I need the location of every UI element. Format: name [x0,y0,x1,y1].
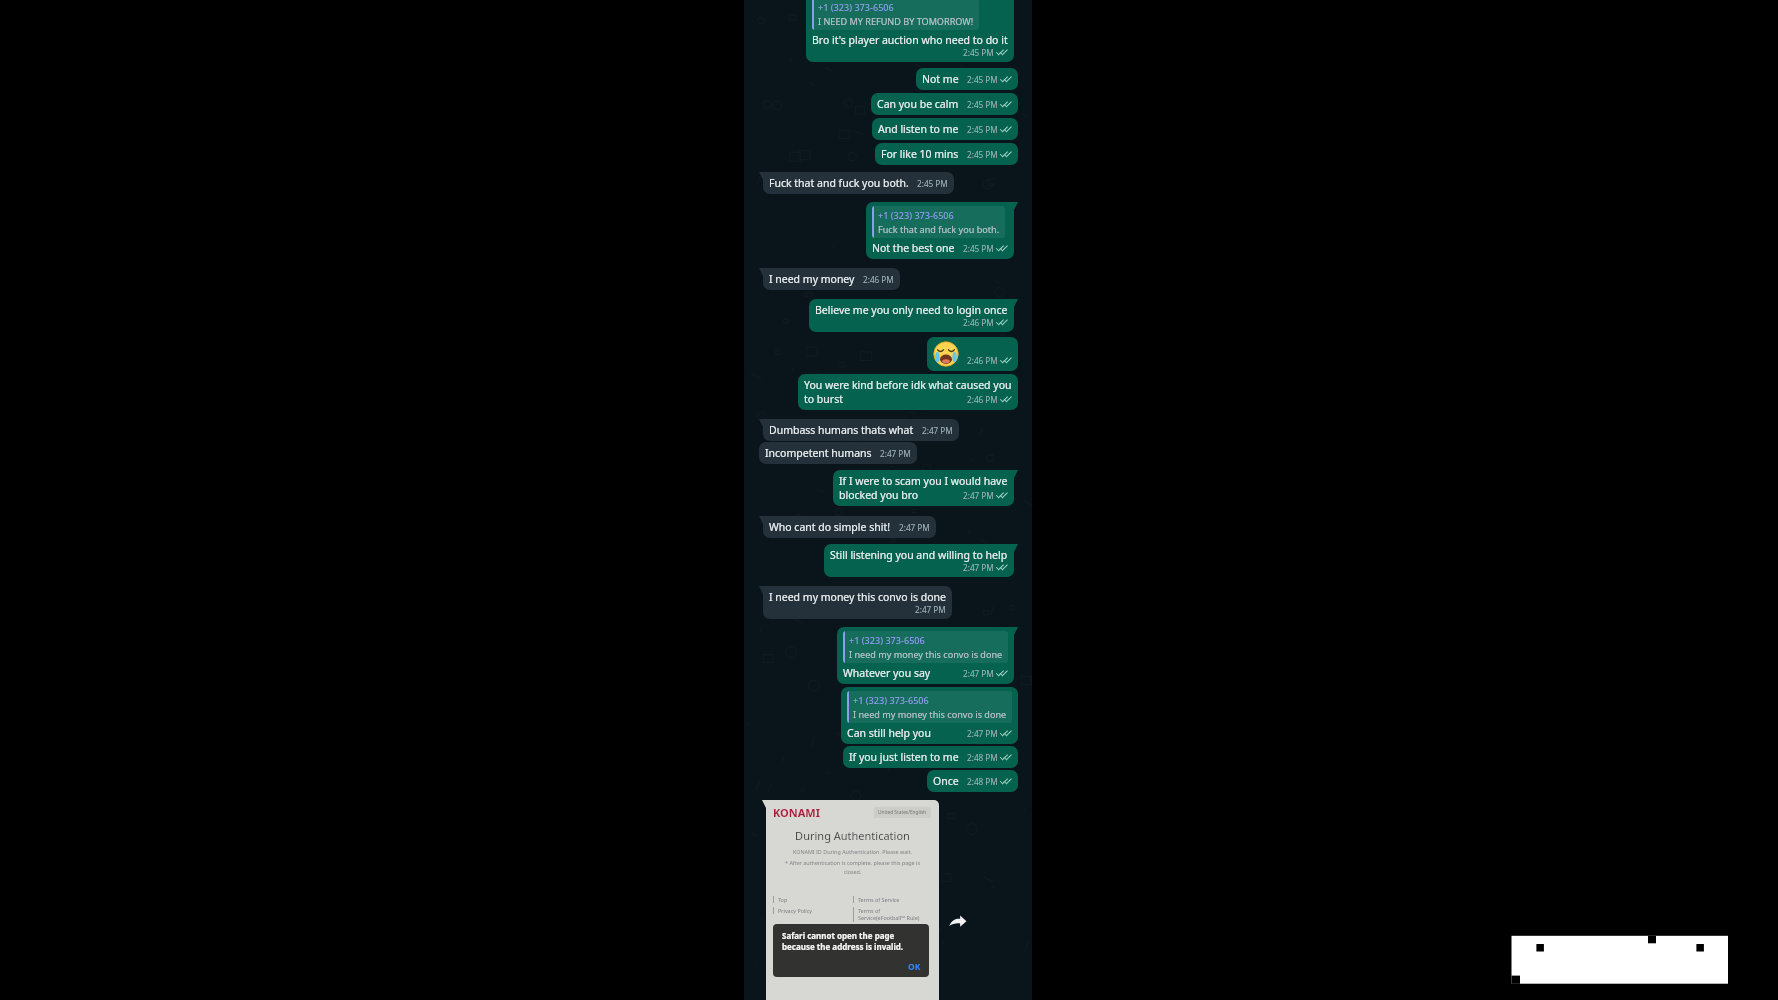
staticText: 2:47 PM [880,448,911,459]
staticText: And listen to me [878,122,959,136]
staticText: 2:48 PM [967,752,998,763]
button[interactable]: Not me [916,68,1018,90]
staticText: I need my money this convo is done [853,708,1007,720]
staticText: I need my money this convo is done [769,590,946,604]
staticText: Safari cannot open the page because the … [782,930,904,952]
staticText: Terms of Service(eFootball™ Rule) [858,907,920,922]
staticText: Terms of Service [858,896,900,903]
staticText: I need my money [769,272,855,286]
staticText: 2:45 PM [967,124,998,135]
button[interactable]: +1 (323) 373-6506 [837,627,1014,684]
staticText: 2:47 PM [899,522,930,533]
staticText: +1 (323) 373-6506 [853,694,929,706]
staticText: Not me [922,72,959,86]
staticText: 2:47 PM [967,728,998,739]
staticText: Still listening you and willing to help [830,548,1008,562]
button[interactable]: Fuck that and fuck you both. [763,172,954,194]
staticText: 2:46 PM [863,274,894,285]
staticText: Incompetent humans [765,446,872,460]
staticText: United States/English [878,809,927,816]
button[interactable]: 2:46 PM [927,337,1018,371]
button[interactable]: If I were to scam you I would have block… [833,470,1014,506]
staticText: I need my money this convo is done [849,648,1003,660]
staticText: 2:47 PM [915,604,946,615]
staticText: 2:48 PM [967,776,998,787]
button[interactable]: You were kind before idk what caused you… [798,374,1018,410]
staticText: 2:45 PM [917,178,948,189]
button[interactable]: KONAMI [766,800,939,1000]
button[interactable]: +1 (323) 373-6506 [866,202,1014,259]
button[interactable]: Who cant do simple shit! [763,516,936,538]
staticText: 2:47 PM [963,490,994,501]
staticText: 2:45 PM [967,149,998,160]
staticText: 2:45 PM [967,99,998,110]
button[interactable]: Dumbass humans thats what [763,419,959,441]
staticText: * After authentication is complete, plea… [782,859,923,875]
button[interactable]: Still listening you and willing to help [824,544,1014,577]
button[interactable]: For like 10 mins [875,143,1018,165]
button[interactable]: Once [927,770,1018,792]
button[interactable]: I need my money [763,268,900,290]
button[interactable]: If you just listen to me [843,746,1018,768]
staticText: Not the best one [872,241,955,255]
staticText: Who cant do simple shit! [769,520,891,534]
staticText: OK [908,961,921,973]
button[interactable]: +1 (323) 373-6506 [841,687,1018,744]
staticText: Can you be calm [877,97,959,111]
staticText: Bro it's player auction who need to do i… [812,33,1008,47]
staticText: +1 (323) 373-6506 [818,1,894,13]
staticText: Believe me you only need to login once [815,303,1008,317]
staticText: Once [933,774,959,788]
staticText: If you just listen to me [849,750,959,764]
staticText: You were kind before idk what caused you… [804,378,1012,406]
staticText: 2:47 PM [963,562,994,573]
staticText: I NEED MY REFUND BY TOMORROW! [818,15,974,27]
staticText: +1 (323) 373-6506 [849,634,925,646]
staticText: KONAMI ID During Authentication. Please … [766,848,939,855]
button[interactable]: I need my money this convo is done [763,586,952,619]
staticText: Fuck that and fuck you both. [769,176,909,190]
staticText: For like 10 mins [881,147,959,161]
staticText: +1 (323) 373-6506 [878,209,954,221]
staticText: 2:47 PM [922,425,953,436]
staticText: 2:45 PM [963,47,994,58]
staticText: Whatever you say [843,666,931,680]
staticText: 2:45 PM [967,74,998,85]
staticText: 2:45 PM [963,243,994,254]
staticText: If I were to scam you I would have block… [839,474,1008,502]
staticText: 2:46 PM [967,394,998,405]
button[interactable]: Can you be calm [871,93,1018,115]
button[interactable]: And listen to me [872,118,1018,140]
staticText: Dumbass humans thats what [769,423,914,437]
staticText: Top [778,896,788,903]
staticText: Fuck that and fuck you both. [878,223,1000,235]
staticText: 2:46 PM [963,317,994,328]
staticText: 2:46 PM [967,355,998,366]
staticText: Can still help you [847,726,931,740]
button[interactable]: Forward [948,912,967,931]
button[interactable]: Incompetent humans [759,442,917,464]
button[interactable]: +1 (323) 373-6506 [806,0,1014,62]
staticText: Privacy Policy [778,907,813,914]
staticText: During Authentication [766,828,939,843]
staticText: KONAMI [773,805,820,820]
staticText: 2:47 PM [963,668,994,679]
button[interactable]: Believe me you only need to login once [809,299,1014,332]
